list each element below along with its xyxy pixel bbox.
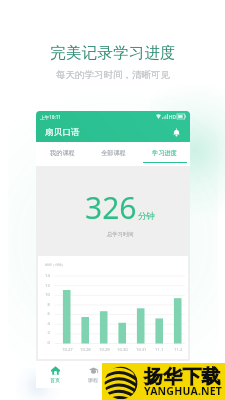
- staticText: 10.30: [117, 347, 128, 353]
- staticText: 上午10:11: [40, 114, 61, 120]
- staticText: 12: [45, 283, 50, 289]
- staticText: 11.2: [174, 347, 183, 353]
- staticText: 我的: [166, 377, 176, 383]
- staticText: 课程: [88, 377, 98, 383]
- staticText: 10.27: [62, 347, 73, 353]
- staticText: 6: [47, 311, 50, 317]
- staticText: 全部课程: [101, 149, 126, 157]
- staticText: HD: [169, 114, 176, 120]
- staticText: YANGHUA.NET: [144, 384, 223, 398]
- staticText: 326: [85, 187, 137, 228]
- staticText: 我的课程: [50, 149, 75, 157]
- staticText: 时间（分钟）: [45, 263, 65, 267]
- button[interactable]: 全部课程: [88, 142, 139, 166]
- staticText: 10: [45, 292, 50, 298]
- button[interactable]: 首页: [36, 361, 74, 388]
- button[interactable]: 学习进度: [139, 142, 190, 166]
- staticText: 10.28: [80, 347, 91, 353]
- button[interactable]: 课程: [74, 361, 112, 388]
- staticText: 8: [47, 302, 50, 308]
- staticText: 扇贝口语: [45, 127, 80, 138]
- button[interactable]: Notifications: [169, 125, 184, 140]
- button[interactable]: 我的: [151, 361, 190, 388]
- staticText: 完美记录学习进度: [50, 43, 176, 63]
- staticText: 10.29: [99, 347, 110, 353]
- staticText: 分钟: [138, 211, 155, 222]
- staticText: 2: [47, 330, 50, 336]
- staticText: 11.1: [155, 347, 164, 353]
- button[interactable]: 发现: [112, 361, 151, 388]
- staticText: 首页: [50, 377, 60, 383]
- button[interactable]: 我的课程: [36, 142, 88, 166]
- staticText: 学习进度: [152, 149, 177, 157]
- staticText: 10.31: [136, 347, 147, 353]
- staticText: 总学习时间: [107, 231, 134, 238]
- staticText: 4: [47, 321, 50, 327]
- staticText: 扬华下载: [144, 365, 221, 389]
- staticText: 发现: [127, 377, 137, 383]
- staticText: 14: [45, 273, 50, 279]
- staticText: 每天的学习时间，清晰可见: [56, 69, 170, 81]
- staticText: 0: [47, 340, 50, 346]
